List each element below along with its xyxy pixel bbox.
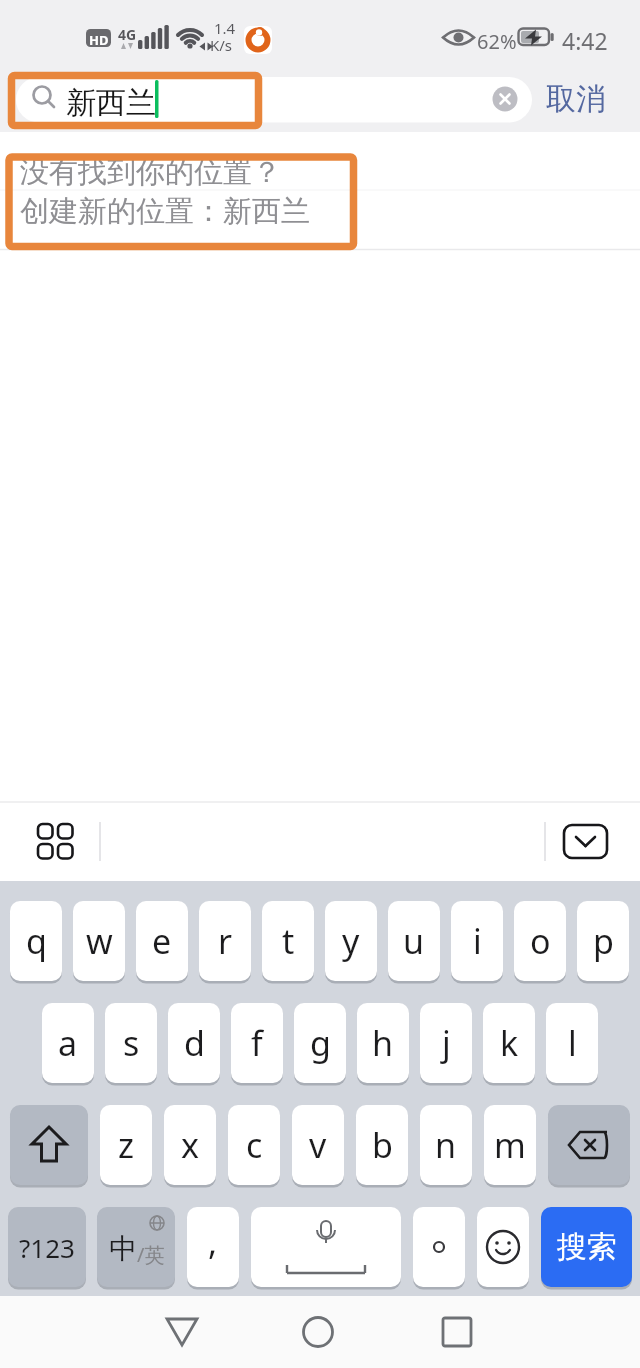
- staticText: p: [593, 918, 614, 964]
- staticText: b: [372, 1122, 393, 1168]
- staticText: 4G: [118, 25, 137, 44]
- staticText: f: [251, 1020, 263, 1066]
- button[interactable]: [10, 1105, 88, 1185]
- button[interactable]: x: [164, 1105, 216, 1185]
- staticText: 1.4: [214, 18, 236, 38]
- staticText: q: [26, 918, 47, 964]
- staticText: r: [218, 918, 233, 964]
- staticText: h: [372, 1020, 394, 1066]
- button[interactable]: e: [136, 901, 188, 981]
- staticText: o: [530, 918, 551, 964]
- staticText: x: [181, 1122, 199, 1168]
- staticText: 没有找到你的位置？: [20, 154, 281, 191]
- button[interactable]: [477, 1207, 529, 1287]
- button[interactable]: a: [42, 1003, 94, 1083]
- button[interactable]: 没有找到你的位置？: [20, 154, 281, 191]
- button[interactable]: u: [388, 901, 440, 981]
- staticText: 新西兰: [66, 84, 156, 122]
- staticText: a: [58, 1020, 78, 1066]
- button[interactable]: s: [105, 1003, 157, 1083]
- button[interactable]: ?123: [8, 1207, 86, 1287]
- button[interactable]: o: [514, 901, 566, 981]
- staticText: t: [282, 918, 295, 964]
- button[interactable]: f: [231, 1003, 283, 1083]
- staticText: 62%: [477, 28, 517, 55]
- button[interactable]: i: [451, 901, 503, 981]
- button[interactable]: n: [420, 1105, 472, 1185]
- staticText: w: [86, 918, 113, 964]
- button[interactable]: [413, 1207, 465, 1287]
- staticText: g: [310, 1020, 331, 1066]
- button[interactable]: 创建新的位置：新西兰: [20, 193, 310, 230]
- staticText: d: [184, 1020, 205, 1066]
- button[interactable]: c: [228, 1105, 280, 1185]
- staticText: 中: [109, 1231, 137, 1266]
- staticText: z: [118, 1122, 134, 1168]
- staticText: 取消: [546, 80, 606, 118]
- staticText: k: [500, 1020, 519, 1066]
- button[interactable]: h: [357, 1003, 409, 1083]
- staticText: s: [123, 1020, 140, 1066]
- staticText: c: [246, 1122, 263, 1168]
- button[interactable]: r: [199, 901, 251, 981]
- staticText: j: [442, 1020, 451, 1066]
- button[interactable]: j: [420, 1003, 472, 1083]
- button[interactable]: [251, 1207, 401, 1287]
- staticText: 4:42: [562, 25, 608, 56]
- button[interactable]: [548, 1105, 630, 1185]
- staticText: u: [403, 918, 425, 964]
- button[interactable]: p: [577, 901, 629, 981]
- staticText: n: [435, 1122, 457, 1168]
- button[interactable]: y: [325, 901, 377, 981]
- button[interactable]: w: [73, 901, 125, 981]
- staticText: 搜索: [557, 1228, 617, 1266]
- staticText: /英: [137, 1241, 165, 1268]
- staticText: i: [473, 918, 482, 964]
- button[interactable]: 搜索: [541, 1207, 632, 1287]
- button[interactable]: k: [483, 1003, 535, 1083]
- staticText: m: [494, 1122, 526, 1168]
- button[interactable]: b: [356, 1105, 408, 1185]
- button[interactable]: m: [484, 1105, 536, 1185]
- staticText: HD: [89, 31, 109, 49]
- button[interactable]: t: [262, 901, 314, 981]
- staticText: v: [309, 1122, 327, 1168]
- staticText: y: [342, 918, 360, 964]
- button[interactable]: ,: [187, 1207, 239, 1287]
- staticText: 创建新的位置：新西兰: [20, 193, 310, 230]
- button[interactable]: 取消: [546, 80, 606, 118]
- button[interactable]: z: [100, 1105, 152, 1185]
- staticText: l: [568, 1020, 577, 1066]
- button[interactable]: v: [292, 1105, 344, 1185]
- button[interactable]: q: [10, 901, 62, 981]
- staticText: K/s: [210, 35, 233, 55]
- staticText: e: [152, 918, 172, 964]
- button[interactable]: 新西兰: [16, 76, 532, 123]
- staticText: ?123: [19, 1230, 75, 1265]
- button[interactable]: d: [168, 1003, 220, 1083]
- button[interactable]: g: [294, 1003, 346, 1083]
- button[interactable]: 中: [97, 1207, 175, 1287]
- staticText: ,: [208, 1219, 218, 1265]
- button[interactable]: l: [546, 1003, 598, 1083]
